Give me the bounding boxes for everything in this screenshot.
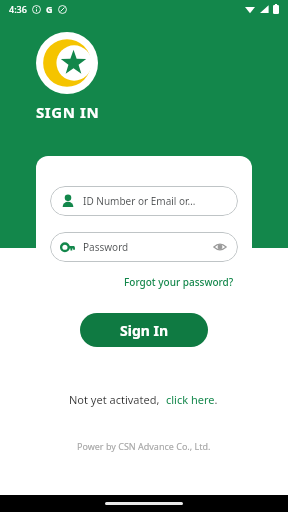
staticText: Sign In: [120, 321, 169, 340]
button[interactable]: Sign In: [80, 313, 208, 347]
button[interactable]: ID Number or Email field: [50, 186, 238, 216]
staticText: ID Number or Email or…: [83, 194, 196, 208]
other: App logo: [36, 32, 98, 94]
button[interactable]: Forgot your password?: [122, 273, 236, 291]
staticText: G: [46, 3, 53, 15]
staticText: Power by CSN Advance Co., Ltd.: [77, 440, 211, 452]
staticText: Not yet activated,: [69, 392, 160, 407]
button[interactable]: click here.: [165, 390, 219, 409]
staticText: Forgot your password?: [124, 275, 234, 289]
staticText: Password: [83, 240, 129, 254]
button[interactable]: Show password: [213, 240, 227, 254]
staticText: SIGN IN: [36, 102, 100, 122]
button[interactable]: Password field: [50, 232, 238, 262]
staticText: click here.: [166, 392, 218, 407]
staticText: 4:36: [9, 3, 27, 15]
